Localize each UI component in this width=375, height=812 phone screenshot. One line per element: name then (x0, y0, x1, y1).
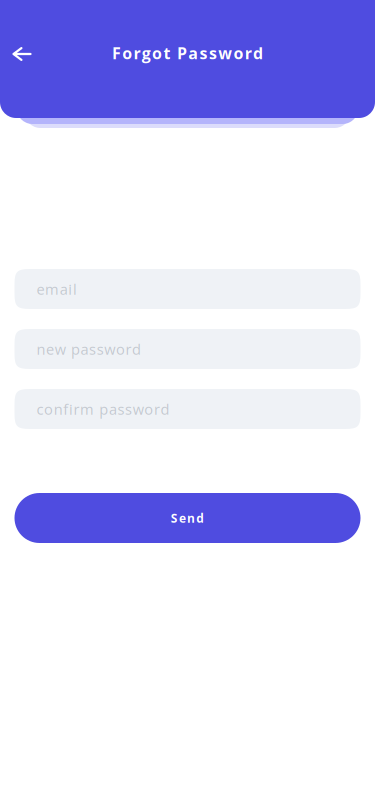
button[interactable]: new password (14, 329, 360, 369)
button[interactable]: confirm password (14, 389, 360, 429)
staticText: confirm password (36, 399, 169, 419)
button[interactable]: Back (0, 35, 42, 73)
staticText: Send (171, 510, 204, 526)
staticText: new password (36, 339, 141, 359)
button[interactable]: Send (14, 493, 360, 543)
button[interactable]: email (14, 269, 360, 309)
staticText: Forgot Password (112, 42, 263, 64)
staticText: email (36, 279, 77, 299)
